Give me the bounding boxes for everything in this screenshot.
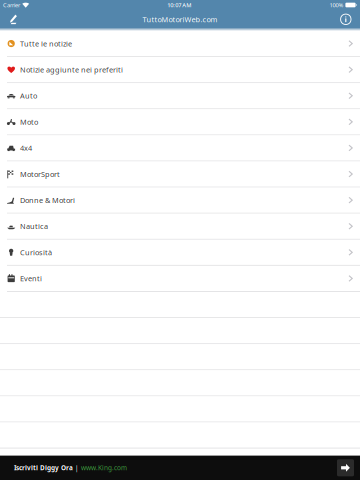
button[interactable]: Notizie aggiunte nei preferiti — [0, 57, 360, 83]
staticText: 100% — [329, 1, 343, 9]
staticText: Moto — [20, 117, 38, 127]
staticText: Notizie aggiunte nei preferiti — [20, 65, 123, 75]
staticText: www.King.com — [81, 463, 127, 472]
button[interactable]: Eventi — [0, 266, 360, 292]
button[interactable]: Iscriviti Diggy Ora — [0, 456, 360, 480]
button[interactable]: MotorSport — [0, 161, 360, 188]
staticText: Carrier — [3, 1, 20, 9]
staticText: TuttoMotoriWeb.com — [142, 14, 217, 24]
staticText: Eventi — [20, 273, 42, 283]
button[interactable]: Info — [334, 10, 358, 29]
button[interactable]: Moto — [0, 109, 360, 135]
staticText: Tutte le notizie — [20, 39, 72, 49]
button[interactable]: Donne & Motori — [0, 188, 360, 214]
staticText: Nautica — [20, 221, 48, 231]
staticText: Donne & Motori — [20, 195, 75, 205]
button[interactable]: Tutte le notizie — [0, 31, 360, 57]
button[interactable]: 4x4 — [0, 135, 360, 161]
staticText: Iscriviti Diggy Ora — [14, 463, 73, 472]
button[interactable]: Auto — [0, 83, 360, 109]
button[interactable]: Nautica — [0, 214, 360, 240]
staticText: | — [73, 463, 81, 472]
button[interactable]: Curiosità — [0, 240, 360, 266]
staticText: MotorSport — [20, 169, 60, 179]
staticText: 4x4 — [20, 143, 32, 153]
staticText: Curiosità — [20, 247, 52, 257]
staticText: 10:07 AM — [167, 1, 191, 9]
button[interactable]: Compose — [3, 10, 24, 29]
staticText: Auto — [20, 91, 37, 101]
